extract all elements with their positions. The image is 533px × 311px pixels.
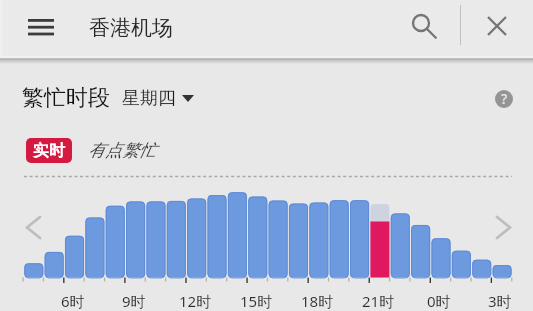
button[interactable]: Search bbox=[401, 2, 445, 48]
staticText: 6时 bbox=[61, 291, 85, 311]
staticText: 星期四 bbox=[122, 87, 176, 110]
button[interactable]: Open navigation menu bbox=[16, 4, 62, 54]
button[interactable]: Previous day bbox=[19, 213, 48, 242]
staticText: 12时 bbox=[179, 291, 212, 311]
staticText: 18时 bbox=[301, 291, 334, 311]
button[interactable]: Next day bbox=[489, 213, 518, 242]
staticText: 9时 bbox=[122, 291, 146, 311]
staticText: 实时 bbox=[33, 141, 65, 161]
button[interactable]: 实时 bbox=[26, 138, 72, 163]
button[interactable]: Help bbox=[490, 85, 518, 113]
staticText: 21时 bbox=[362, 291, 395, 311]
staticText: ? bbox=[501, 89, 508, 108]
staticText: 香港机场 bbox=[89, 15, 173, 41]
button[interactable]: 星期四 bbox=[122, 87, 194, 110]
staticText: 3时 bbox=[488, 291, 512, 311]
staticText: 15时 bbox=[240, 291, 273, 311]
staticText: 0时 bbox=[427, 291, 451, 311]
staticText: 繁忙时段 bbox=[22, 84, 110, 112]
button[interactable]: Close bbox=[474, 3, 520, 49]
staticText: 有点繁忙 bbox=[88, 140, 156, 161]
